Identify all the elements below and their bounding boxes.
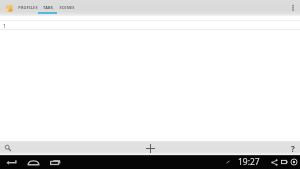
button[interactable]: 1	[0, 21, 300, 29]
button[interactable]: More options	[286, 0, 300, 16]
button[interactable]: TABS	[38, 0, 57, 16]
staticText: PROFILES	[18, 5, 38, 10]
staticText: TABS	[43, 5, 53, 10]
button[interactable]: Recent apps	[44, 155, 66, 169]
button[interactable]: PROFILES	[18, 0, 38, 16]
button[interactable]: Home	[22, 155, 44, 169]
button[interactable]: SCENES	[57, 0, 76, 16]
button[interactable]: Add	[141, 141, 159, 155]
button[interactable]: Search	[0, 141, 15, 155]
staticText: SCENES	[59, 5, 75, 10]
staticText: 1	[3, 22, 7, 29]
button[interactable]: App icon	[4, 0, 15, 16]
staticText: ?	[291, 143, 295, 154]
button[interactable]: Back	[0, 155, 22, 169]
staticText: 19:27	[238, 156, 260, 168]
button[interactable]: Help	[286, 141, 300, 155]
